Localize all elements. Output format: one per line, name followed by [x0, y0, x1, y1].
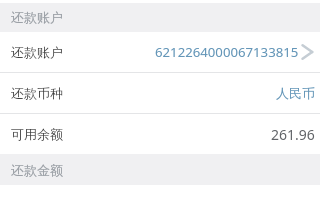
- other: 选择还款账户: [301, 44, 314, 60]
- button[interactable]: 还款账户: [0, 32, 320, 72]
- staticText: 可用余额: [11, 126, 63, 142]
- staticText: 还款账户: [11, 44, 63, 60]
- staticText: 还款账户: [11, 9, 63, 25]
- staticText: 还款金额: [11, 162, 63, 178]
- staticText: 还款币种: [11, 85, 63, 101]
- button[interactable]: 还款币种: [0, 73, 320, 113]
- staticText: 6212264000067133815: [155, 43, 299, 61]
- staticText: 261.96: [271, 125, 315, 144]
- staticText: 人民币: [276, 85, 315, 101]
